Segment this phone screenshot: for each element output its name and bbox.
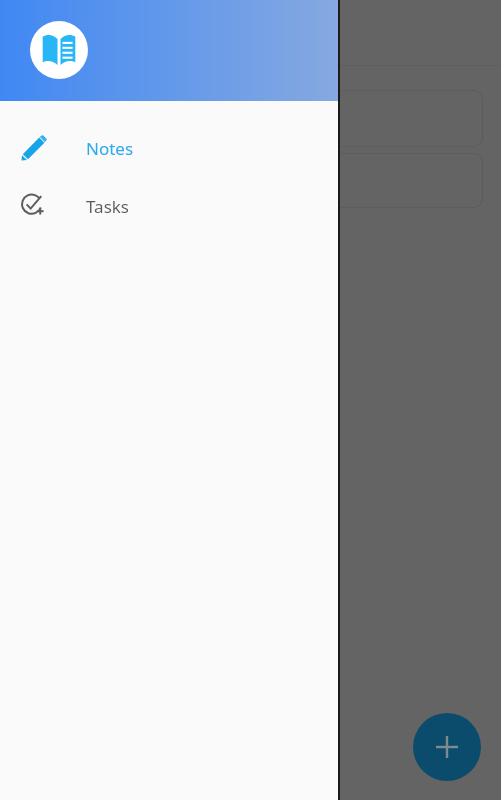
staticText: Notes	[86, 137, 134, 160]
button[interactable]	[300, 153, 483, 208]
button[interactable]: Notes	[0, 119, 340, 177]
button[interactable]	[300, 90, 483, 147]
button[interactable]: Add note	[413, 713, 481, 781]
staticText: Tasks	[86, 195, 129, 218]
button[interactable]: Tasks	[0, 177, 340, 235]
